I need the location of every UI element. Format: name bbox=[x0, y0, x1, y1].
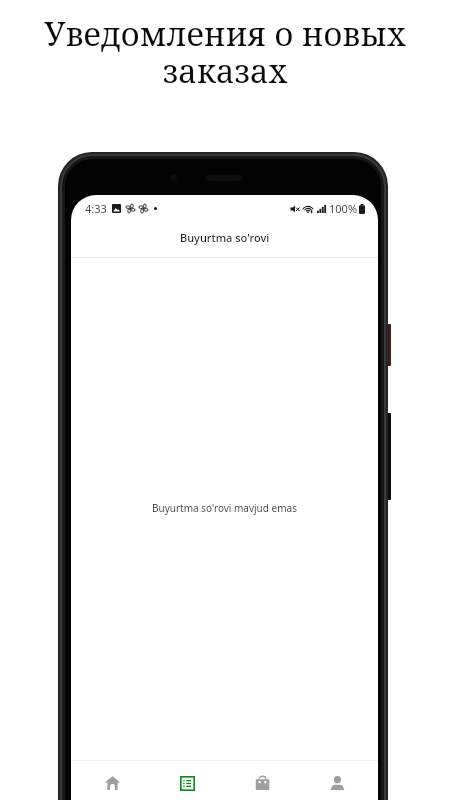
staticText: 4:33 bbox=[85, 201, 107, 216]
button[interactable]: Home bbox=[74, 761, 150, 800]
button[interactable]: Profile bbox=[300, 761, 375, 800]
staticText: Buyurtma so'rovi bbox=[180, 230, 270, 245]
staticText: 100% bbox=[329, 201, 358, 216]
staticText: Buyurtma so'rovi mavjud emas bbox=[152, 501, 297, 515]
button[interactable]: Orders bbox=[150, 761, 225, 800]
button[interactable]: Shop bbox=[225, 761, 300, 800]
staticText: Уведомления о новых заказах bbox=[18, 11, 432, 93]
